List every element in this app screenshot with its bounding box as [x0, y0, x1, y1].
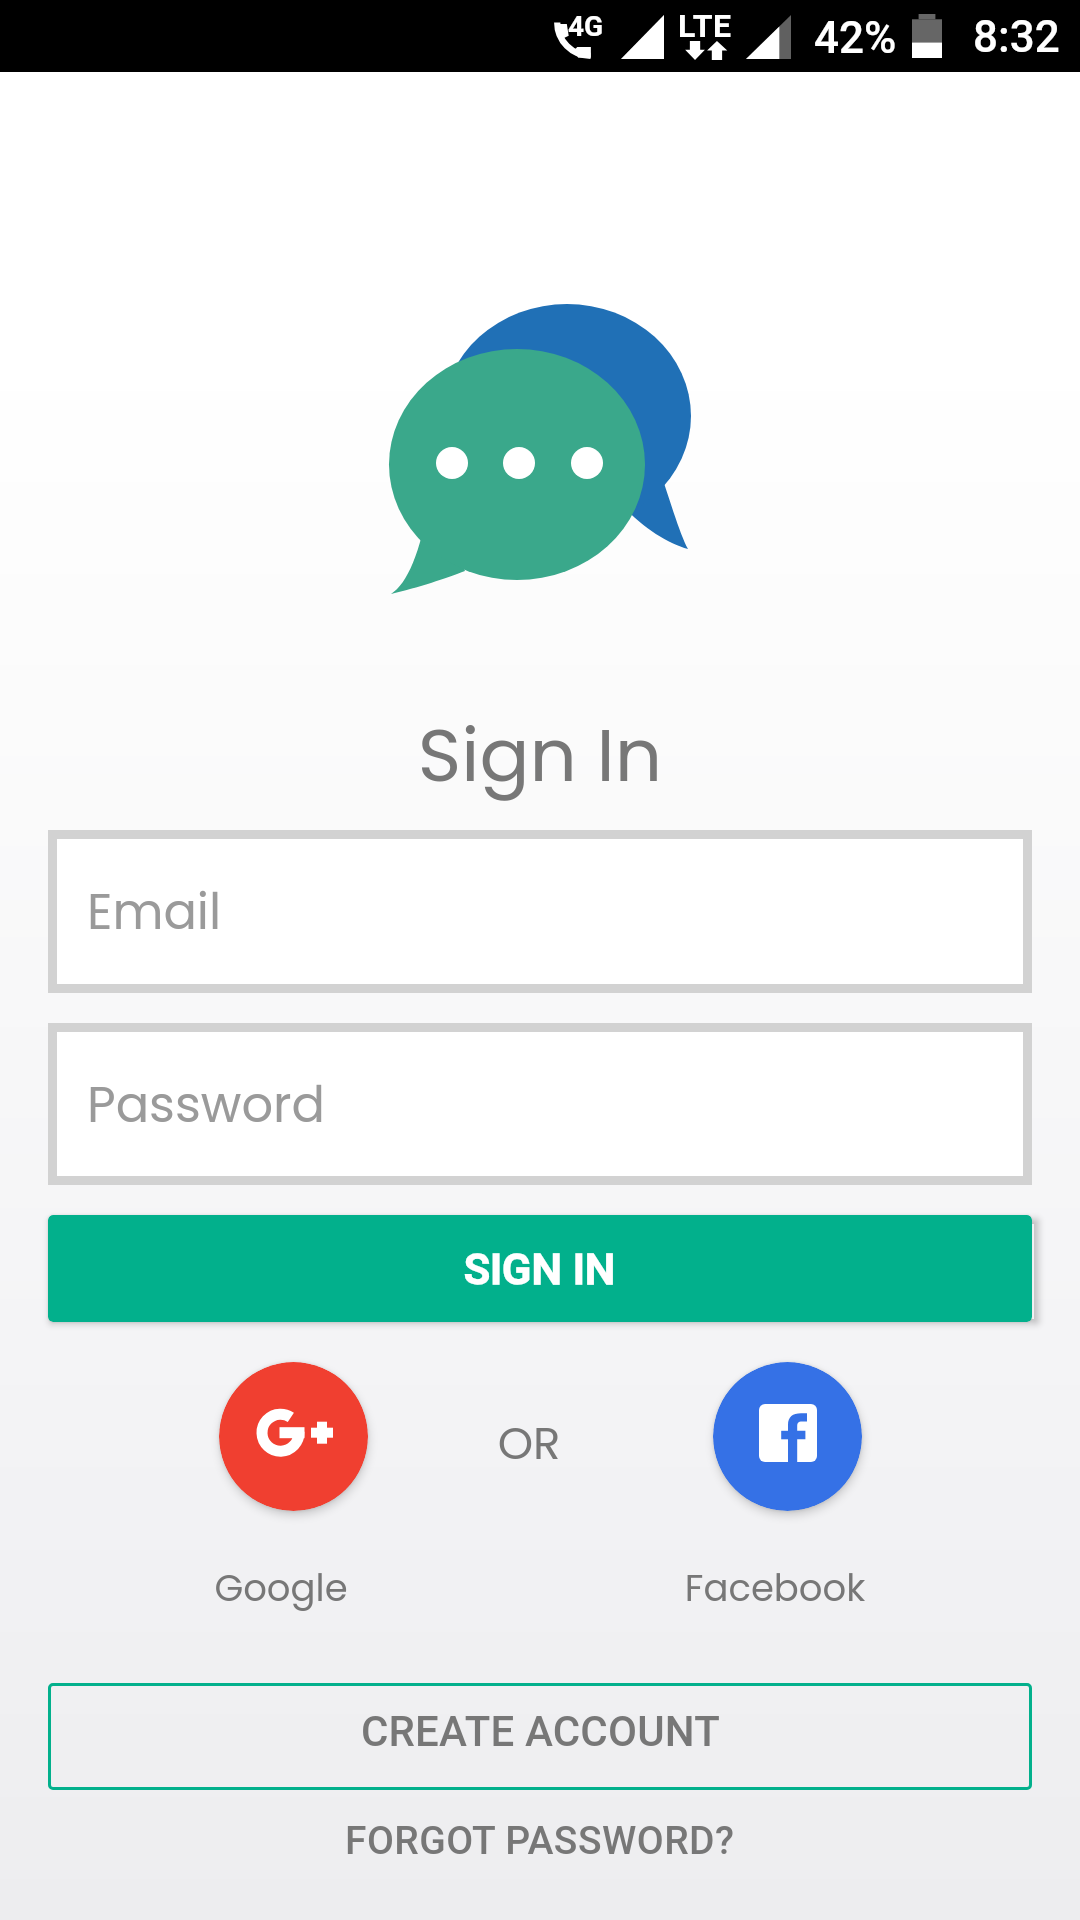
staticText: Email	[87, 877, 222, 946]
button[interactable]: FORGOT PASSWORD?	[300, 1800, 780, 1882]
staticText: LTE	[678, 7, 732, 45]
staticText: 42%	[814, 12, 897, 64]
button[interactable]: Sign in with Google	[219, 1362, 368, 1511]
staticText: Google	[81, 1562, 481, 1614]
staticText: Password	[87, 1070, 325, 1139]
staticText: FORGOT PASSWORD?	[345, 1818, 735, 1864]
staticText: Sign In	[0, 703, 1080, 807]
staticText: OR	[469, 1412, 589, 1475]
staticText: 4G	[568, 10, 604, 43]
button[interactable]: SIGN IN	[48, 1215, 1032, 1322]
button[interactable]: CREATE ACCOUNT	[48, 1683, 1032, 1790]
button[interactable]: Password	[57, 1032, 1023, 1176]
button[interactable]: Sign in with Facebook	[713, 1362, 862, 1511]
button[interactable]: Email	[57, 839, 1023, 984]
staticText: Facebook	[575, 1562, 975, 1614]
staticText: 8:32	[973, 11, 1060, 63]
staticText: CREATE ACCOUNT	[361, 1707, 720, 1756]
staticText: SIGN IN	[464, 1244, 616, 1294]
